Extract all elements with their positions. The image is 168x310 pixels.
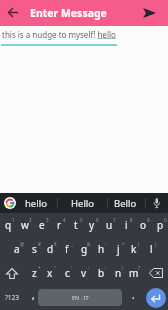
staticText: h [98, 242, 105, 256]
staticText: y [89, 218, 95, 232]
button[interactable]: s [22, 240, 46, 258]
button[interactable]: q [0, 216, 20, 234]
staticText: 5 [80, 217, 83, 223]
staticText: d [47, 242, 54, 256]
button[interactable] [151, 196, 163, 210]
button[interactable]: i [114, 216, 138, 234]
button[interactable] [4, 197, 16, 209]
staticText: " [54, 265, 56, 271]
staticText: 7 [113, 217, 116, 223]
staticText: ) [155, 241, 157, 247]
staticText: l [150, 242, 153, 256]
staticText: j [117, 242, 120, 256]
staticText: o [140, 218, 147, 232]
staticText: Hello [71, 197, 95, 210]
button[interactable]: t [64, 216, 88, 234]
button[interactable]: g [72, 240, 96, 258]
staticText: + [122, 241, 125, 247]
button[interactable]: w [13, 216, 37, 234]
button[interactable]: p [148, 216, 168, 234]
button[interactable]: o [131, 216, 155, 234]
button[interactable]: k [122, 240, 146, 258]
staticText: u [106, 218, 113, 232]
button[interactable] [4, 3, 22, 21]
button[interactable]: Bello [105, 194, 145, 212]
button[interactable]: hello [16, 194, 56, 212]
button[interactable]: v [72, 264, 96, 282]
staticText: ( [138, 241, 140, 247]
button[interactable]: j [106, 240, 130, 258]
button[interactable]: u [97, 216, 121, 234]
staticText: ? [138, 265, 140, 271]
button[interactable] [3, 265, 21, 281]
button[interactable]: l [139, 240, 163, 258]
button[interactable]: z [22, 264, 46, 282]
staticText: 1 [12, 217, 15, 223]
staticText: w [21, 218, 29, 232]
staticText: a [14, 242, 20, 256]
button[interactable]: . [121, 286, 145, 304]
staticText: 2 [29, 217, 32, 223]
staticText: Enter Message [30, 6, 107, 20]
staticText: ! [122, 265, 124, 271]
staticText: , [32, 288, 35, 302]
button[interactable]: ?123 [0, 288, 25, 306]
staticText: g [81, 242, 88, 256]
button[interactable]: f [55, 240, 79, 258]
staticText: p [157, 218, 164, 232]
staticText: * [38, 265, 41, 271]
staticText: k [131, 242, 137, 256]
staticText: _ [71, 241, 73, 247]
staticText: f [65, 242, 69, 256]
button[interactable]: y [80, 216, 104, 234]
staticText: € [54, 241, 57, 247]
button[interactable]: Hello [63, 194, 103, 212]
staticText: x [47, 266, 53, 280]
button[interactable]: , [21, 286, 45, 304]
staticText: & [87, 241, 91, 247]
staticText: ; [105, 265, 107, 271]
staticText: @ [20, 241, 25, 247]
staticText: z [32, 266, 37, 280]
staticText: . [132, 288, 135, 302]
staticText: : [88, 265, 90, 271]
staticText: 0 [164, 217, 167, 223]
staticText: 6 [96, 217, 99, 223]
staticText: b [98, 266, 105, 280]
staticText: ' [71, 265, 73, 271]
button[interactable] [138, 3, 160, 23]
button[interactable]: e [30, 216, 54, 234]
staticText: c [65, 266, 70, 280]
staticText: ?123 [5, 293, 19, 302]
staticText: 8 [130, 217, 133, 223]
staticText: # [38, 241, 41, 247]
button[interactable] [146, 288, 166, 308]
button[interactable]: EN · IT [38, 289, 122, 306]
staticText: Bello [114, 197, 137, 210]
staticText: n [115, 266, 122, 280]
staticText: r [57, 218, 62, 232]
button[interactable]: r [47, 216, 71, 234]
staticText: hello [25, 197, 47, 210]
button[interactable]: x [38, 264, 62, 282]
button[interactable]: c [55, 264, 79, 282]
staticText: t [74, 218, 78, 232]
button[interactable]: m [122, 264, 146, 282]
staticText: 9 [147, 217, 150, 223]
staticText: 3 [46, 217, 49, 223]
staticText: this is a nudge to myself! hello [2, 29, 116, 40]
button[interactable]: a [5, 240, 29, 258]
button[interactable]: h [89, 240, 113, 258]
staticText: EN · IT [72, 294, 89, 301]
button[interactable]: n [106, 264, 130, 282]
staticText: e [39, 218, 45, 232]
button[interactable]: d [38, 240, 62, 258]
staticText: - [105, 241, 107, 247]
button[interactable]: b [89, 264, 113, 282]
staticText: i [125, 218, 128, 232]
staticText: v [81, 266, 87, 280]
staticText: q [5, 218, 12, 232]
button[interactable] [147, 265, 165, 281]
staticText: 4 [63, 217, 66, 223]
staticText: s [32, 242, 37, 256]
